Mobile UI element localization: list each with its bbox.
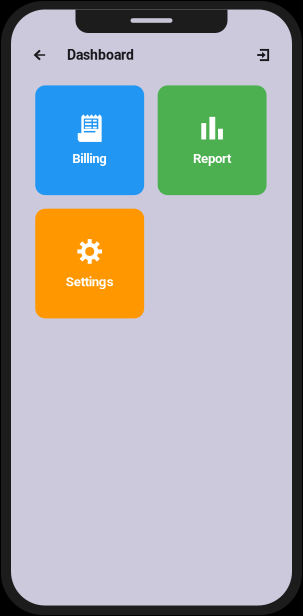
button[interactable]: Billing <box>35 85 144 195</box>
button[interactable]: Report <box>158 85 267 195</box>
staticText: Report <box>193 151 231 166</box>
staticText: Dashboard <box>67 47 134 63</box>
button[interactable]: Settings <box>35 209 144 318</box>
staticText: Billing <box>72 151 107 166</box>
staticText: Settings <box>66 274 114 289</box>
button[interactable]: Back <box>27 42 53 68</box>
button[interactable]: Log out <box>250 42 276 68</box>
